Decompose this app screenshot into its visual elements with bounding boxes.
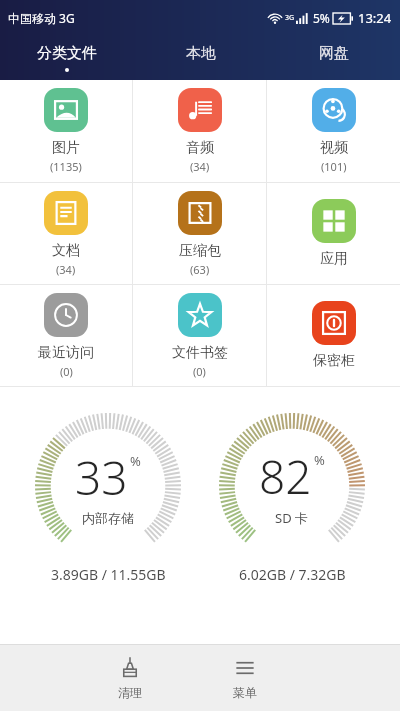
button[interactable]: 菜单: [215, 650, 275, 706]
staticText: %: [130, 452, 141, 470]
staticText: 保密柜: [313, 352, 355, 370]
staticText: 图片: [52, 139, 80, 157]
staticText: 视频: [320, 139, 348, 157]
staticText: 5%: [313, 10, 330, 26]
staticText: (1135): [50, 159, 82, 174]
staticText: 分类文件: [37, 44, 97, 63]
staticText: 13:24: [358, 9, 392, 27]
staticText: (0): [193, 364, 206, 379]
staticText: 文件书签: [172, 344, 228, 362]
staticText: 6.02GB / 7.32GB: [239, 565, 346, 584]
button[interactable]: 文件书签: [133, 285, 266, 386]
button[interactable]: 网盘: [267, 36, 400, 80]
staticText: %: [314, 451, 325, 469]
staticText: 菜单: [233, 685, 257, 700]
staticText: (34): [56, 262, 76, 277]
button[interactable]: 保密柜: [267, 285, 400, 386]
staticText: 压缩包: [179, 242, 221, 260]
staticText: 3G: [285, 13, 295, 23]
staticText: 内部存储: [82, 510, 134, 526]
staticText: 网盘: [319, 44, 349, 63]
staticText: (63): [190, 262, 210, 277]
staticText: (0): [60, 364, 73, 379]
staticText: (101): [321, 159, 347, 174]
staticText: 应用: [320, 250, 348, 268]
button[interactable]: 音频: [133, 80, 266, 182]
button[interactable]: 应用: [267, 183, 400, 284]
button[interactable]: 分类文件: [0, 36, 134, 80]
button[interactable]: 本地: [134, 36, 267, 80]
button[interactable]: 最近访问: [0, 285, 132, 386]
button[interactable]: 视频: [267, 80, 400, 182]
staticText: 82: [259, 445, 312, 508]
staticText: 音频: [186, 139, 214, 157]
staticText: 中国移动 3G: [8, 10, 75, 26]
staticText: 3.89GB / 11.55GB: [51, 565, 166, 584]
staticText: 33: [75, 446, 128, 509]
staticText: 最近访问: [38, 344, 94, 362]
button[interactable]: 清理: [100, 650, 160, 706]
staticText: 本地: [186, 44, 216, 63]
button[interactable]: 文档: [0, 183, 132, 284]
staticText: SD 卡: [275, 509, 309, 527]
staticText: 清理: [118, 685, 142, 700]
button[interactable]: 压缩包: [133, 183, 266, 284]
staticText: (34): [190, 159, 210, 174]
staticText: 文档: [52, 242, 80, 260]
button[interactable]: 图片: [0, 80, 132, 182]
